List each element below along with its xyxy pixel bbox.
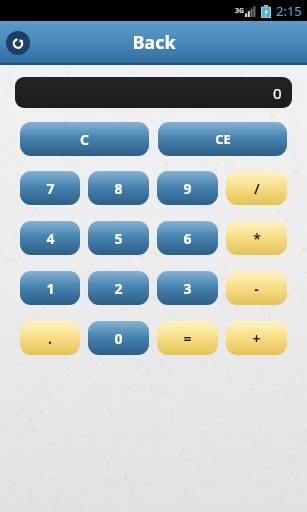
button[interactable]: 9 (157, 171, 218, 205)
button[interactable]: 6 (157, 221, 218, 255)
staticText: 2 (114, 279, 123, 298)
staticText: Back (132, 30, 176, 55)
button[interactable]: . (20, 321, 80, 355)
button[interactable]: = (157, 321, 218, 355)
button[interactable]: 2 (88, 271, 149, 305)
button[interactable]: Back (6, 31, 30, 55)
staticText: 7 (46, 179, 55, 198)
staticText: 0 (273, 83, 282, 103)
button[interactable]: 0 (15, 77, 292, 108)
staticText: 4 (46, 229, 55, 248)
button[interactable]: CE (158, 122, 287, 156)
staticText: 5 (114, 229, 123, 248)
staticText: CE (215, 130, 231, 148)
button[interactable]: 5 (88, 221, 149, 255)
staticText: . (48, 329, 52, 348)
staticText: 1 (46, 279, 55, 298)
button[interactable]: 0 (88, 321, 149, 355)
staticText: + (252, 329, 261, 348)
staticText: / (254, 179, 260, 198)
staticText: 9 (183, 179, 192, 198)
button[interactable]: / (226, 171, 287, 205)
staticText: = (183, 329, 192, 348)
staticText: - (254, 279, 259, 298)
button[interactable]: + (226, 321, 287, 355)
staticText: 8 (114, 179, 123, 198)
button[interactable]: 1 (20, 271, 80, 305)
button[interactable]: * (226, 221, 287, 255)
button[interactable]: C (20, 122, 149, 156)
staticText: 2:15 (276, 2, 302, 20)
button[interactable]: 8 (88, 171, 149, 205)
button[interactable]: 3 (157, 271, 218, 305)
staticText: 3G (235, 6, 245, 16)
button[interactable]: 4 (20, 221, 80, 255)
button[interactable]: - (226, 271, 287, 305)
staticText: * (253, 229, 261, 248)
staticText: 3 (183, 279, 192, 298)
button[interactable]: 7 (20, 171, 80, 205)
staticText: C (80, 130, 89, 149)
staticText: 0 (114, 329, 123, 348)
staticText: 6 (183, 229, 192, 248)
